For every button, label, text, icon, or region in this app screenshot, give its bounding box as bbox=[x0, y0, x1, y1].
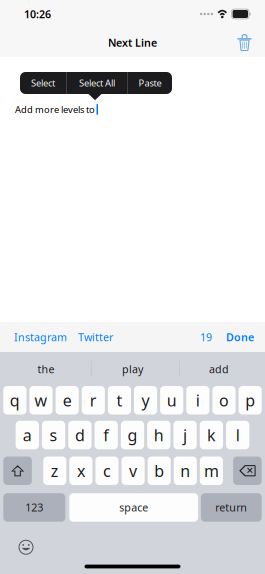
staticText: o bbox=[219, 390, 229, 411]
staticText: Select All bbox=[79, 77, 115, 89]
staticText: f bbox=[103, 424, 109, 446]
button[interactable]: z bbox=[43, 456, 66, 485]
staticText: 10:26 bbox=[24, 7, 51, 21]
button[interactable]: d bbox=[68, 421, 92, 449]
staticText: add bbox=[209, 362, 229, 376]
button[interactable]: v bbox=[122, 456, 145, 485]
button[interactable]: add bbox=[176, 352, 262, 386]
button[interactable]: o bbox=[212, 386, 235, 414]
staticText: t bbox=[116, 390, 122, 411]
button[interactable]: 123 bbox=[3, 493, 65, 522]
button[interactable]: f bbox=[95, 421, 118, 449]
button[interactable]: c bbox=[95, 456, 119, 485]
button[interactable]: a bbox=[16, 421, 39, 449]
button[interactable]: i bbox=[186, 386, 209, 414]
button[interactable]: Delete bbox=[233, 456, 262, 485]
staticText: g bbox=[127, 424, 137, 446]
staticText: r bbox=[90, 390, 97, 411]
staticText: a bbox=[23, 424, 32, 446]
button[interactable]: n bbox=[174, 456, 197, 485]
staticText: c bbox=[103, 460, 111, 481]
staticText: b bbox=[154, 460, 164, 481]
staticText: h bbox=[154, 424, 164, 446]
staticText: e bbox=[63, 390, 72, 411]
button[interactable]: Instagram bbox=[14, 322, 67, 352]
staticText: Next Line bbox=[108, 35, 157, 50]
staticText: Instagram bbox=[14, 330, 67, 344]
staticText: Done bbox=[226, 330, 254, 344]
staticText: Twitter bbox=[78, 330, 113, 344]
button[interactable]: y bbox=[134, 386, 157, 414]
button[interactable]: Emoji keyboard bbox=[16, 537, 36, 557]
button[interactable]: the bbox=[3, 352, 89, 386]
staticText: p bbox=[245, 390, 255, 411]
staticText: d bbox=[75, 424, 85, 446]
staticText: v bbox=[129, 460, 137, 481]
staticText: 19 bbox=[200, 330, 212, 344]
button[interactable]: Select All bbox=[67, 72, 127, 94]
staticText: x bbox=[77, 460, 85, 481]
button[interactable]: p bbox=[239, 386, 262, 414]
staticText: return bbox=[215, 500, 247, 515]
button[interactable]: q bbox=[3, 386, 26, 414]
staticText: Add more levels to bbox=[15, 103, 95, 116]
button[interactable]: k bbox=[200, 421, 223, 449]
button[interactable]: Delete note bbox=[230, 28, 259, 57]
staticText: u bbox=[167, 390, 177, 411]
button[interactable]: l bbox=[226, 421, 249, 449]
staticText: play bbox=[122, 362, 143, 376]
staticText: s bbox=[50, 424, 58, 446]
staticText: z bbox=[51, 460, 59, 481]
staticText: m bbox=[204, 460, 219, 481]
staticText: Paste bbox=[138, 77, 161, 89]
staticText: i bbox=[196, 390, 200, 411]
button[interactable]: u bbox=[160, 386, 183, 414]
button[interactable]: r bbox=[82, 386, 105, 414]
button[interactable]: return bbox=[201, 493, 262, 522]
staticText: q bbox=[10, 390, 20, 411]
button[interactable]: Paste bbox=[128, 72, 172, 94]
button[interactable]: play bbox=[89, 352, 176, 386]
button[interactable]: w bbox=[29, 386, 52, 414]
staticText: w bbox=[34, 390, 47, 411]
button[interactable]: m bbox=[200, 456, 223, 485]
button[interactable]: h bbox=[147, 421, 170, 449]
staticText: 123 bbox=[25, 500, 43, 515]
button[interactable]: Select bbox=[20, 72, 66, 94]
staticText: k bbox=[207, 424, 216, 446]
button[interactable]: t bbox=[108, 386, 131, 414]
button[interactable]: e bbox=[56, 386, 79, 414]
staticText: the bbox=[37, 362, 54, 376]
staticText: Select bbox=[31, 77, 55, 89]
staticText: l bbox=[236, 424, 240, 446]
button[interactable]: space bbox=[69, 493, 198, 522]
staticText: y bbox=[142, 390, 150, 411]
staticText: n bbox=[180, 460, 190, 481]
button[interactable]: Done bbox=[226, 322, 254, 352]
button[interactable]: Shift bbox=[3, 456, 32, 485]
button[interactable]: g bbox=[121, 421, 144, 449]
button[interactable]: Twitter bbox=[78, 322, 113, 352]
staticText: j bbox=[183, 424, 187, 446]
button[interactable]: b bbox=[148, 456, 171, 485]
staticText: space bbox=[119, 500, 148, 515]
button[interactable]: s bbox=[42, 421, 65, 449]
button[interactable]: j bbox=[173, 421, 197, 449]
button[interactable]: x bbox=[69, 456, 92, 485]
